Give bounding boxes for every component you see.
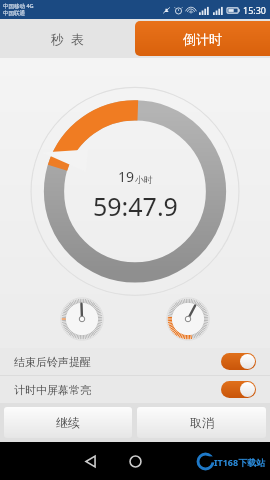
button[interactable]: 倒计时 [135,21,270,56]
staticText: 19 [118,167,135,186]
button[interactable]: 取消 [137,407,266,438]
staticText: 倒计时 [183,31,222,47]
staticText: 取消 [190,415,214,430]
button[interactable]: Home [120,446,150,476]
button[interactable]: 秒 表 [0,19,135,58]
button[interactable]: Back [75,446,105,476]
staticText: IT168下载站 [214,456,266,468]
button[interactable]: Toggle on [221,353,256,370]
button[interactable]: Dial [165,296,211,342]
staticText: 秒 表 [51,30,84,48]
button[interactable]: Dial [59,296,105,342]
button[interactable]: Toggle on [221,381,256,398]
button[interactable]: 计时中屏幕常亮 [0,376,270,403]
staticText: 15:30 [243,4,267,16]
button[interactable]: 继续 [4,407,132,438]
staticText: 结束后铃声提醒 [14,355,91,369]
staticText: 继续 [56,415,80,430]
button[interactable]: 结束后铃声提醒 [0,348,270,375]
staticText: 中国移动 4G [3,2,34,10]
staticText: 59:47.9 [93,189,178,223]
staticText: 计时中屏幕常亮 [14,383,91,397]
staticText: 中国联通 [3,10,25,17]
staticText: 小时 [135,174,153,185]
